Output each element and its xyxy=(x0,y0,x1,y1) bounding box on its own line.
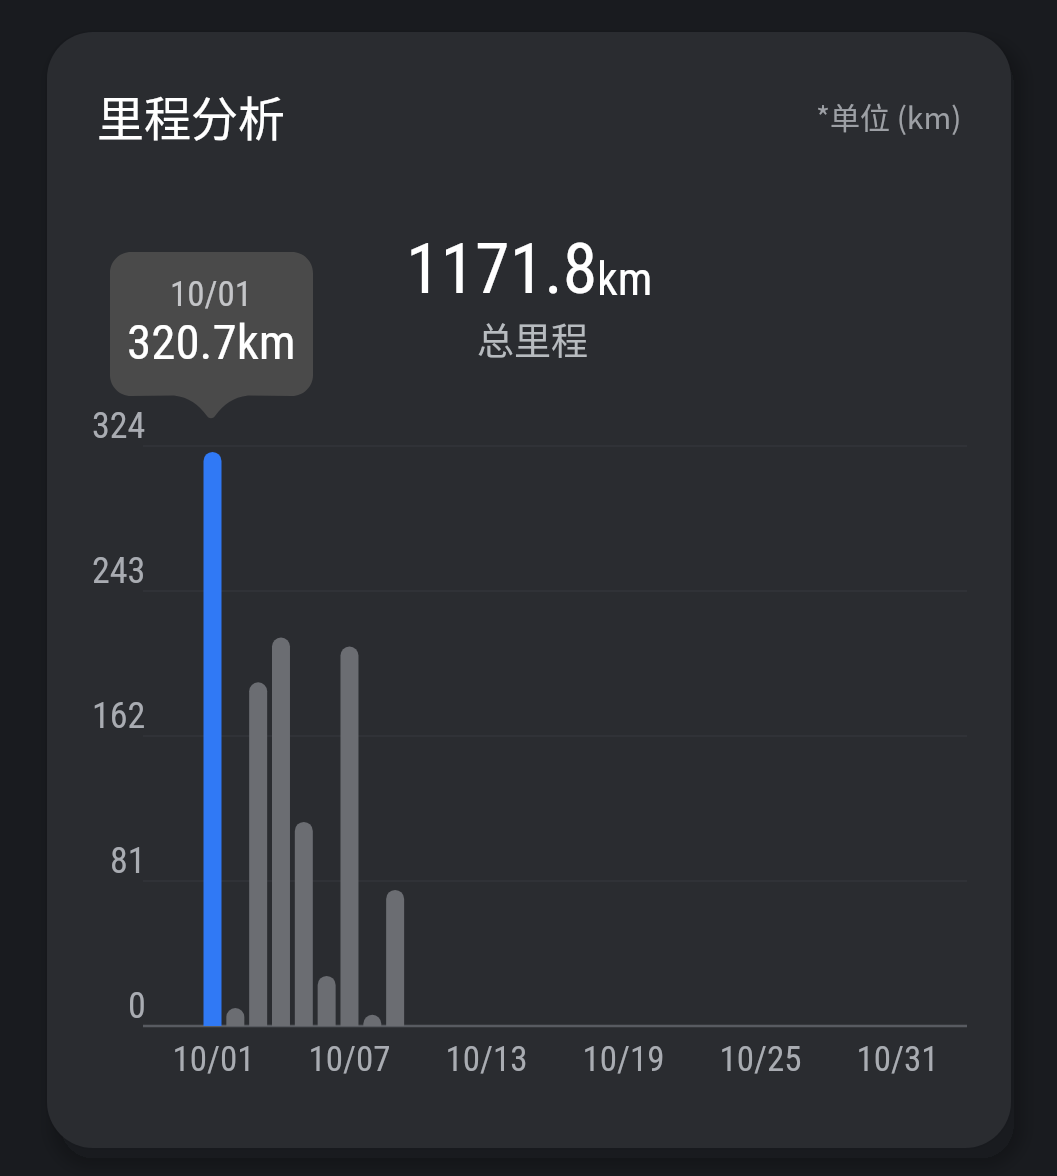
staticText: km xyxy=(597,252,653,306)
button[interactable]: 10/01 320.7km xyxy=(110,252,313,418)
staticText: 10/07 xyxy=(308,1039,391,1080)
staticText: 10/25 xyxy=(719,1039,802,1080)
staticText: 10/01 xyxy=(170,274,253,315)
staticText: 10/31 xyxy=(856,1039,939,1080)
staticText: 320.7km xyxy=(127,314,296,371)
staticText: 162 xyxy=(92,695,146,737)
staticText: 0 xyxy=(128,985,146,1027)
staticText: 10/19 xyxy=(582,1039,665,1080)
button[interactable]: 里程分析 xyxy=(47,32,1011,1148)
staticText: 243 xyxy=(92,550,146,592)
staticText: *单位 (km) xyxy=(816,94,962,137)
staticText: 1171.8 xyxy=(406,228,598,310)
staticText: 总里程 xyxy=(477,312,588,366)
staticText: 10/13 xyxy=(445,1039,528,1080)
staticText: 81 xyxy=(110,840,146,882)
staticText: 10/01 xyxy=(172,1039,255,1080)
staticText: 里程分析 xyxy=(97,81,285,149)
staticText: 324 xyxy=(92,405,146,447)
